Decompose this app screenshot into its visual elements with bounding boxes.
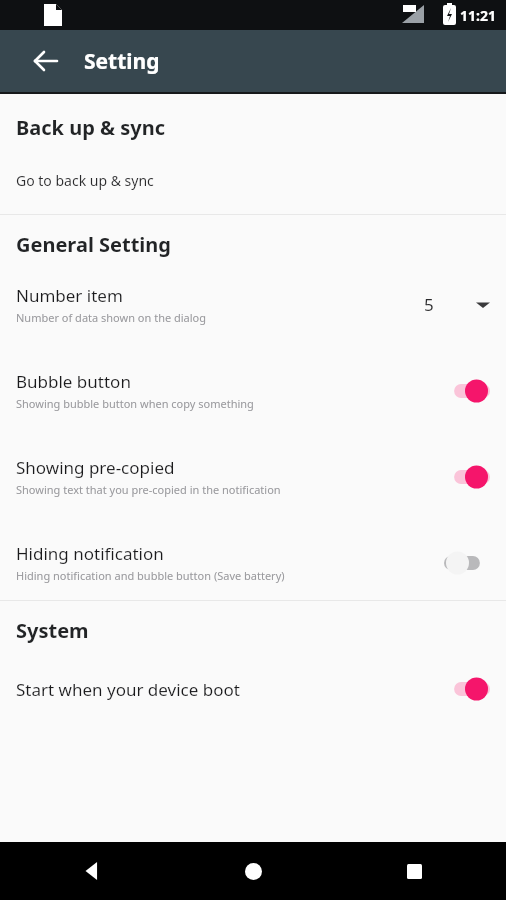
staticText: Showing bubble button when copy somethin… xyxy=(16,396,254,411)
staticText: Start when your device boot xyxy=(16,678,444,701)
staticText: Showing text that you pre-copied in the … xyxy=(16,482,281,497)
staticText: System xyxy=(16,617,89,644)
staticText: Hiding notification xyxy=(16,542,164,565)
button[interactable]: Toggle on xyxy=(444,676,490,702)
staticText: Number item xyxy=(16,284,123,307)
staticText: Bubble button xyxy=(16,370,131,393)
button[interactable]: Bubble button xyxy=(0,370,506,411)
staticText: Number of data shown on the dialog xyxy=(16,310,207,325)
staticText: Go to back up & sync xyxy=(16,171,154,190)
staticText: Setting xyxy=(84,47,160,76)
button[interactable]: Hiding notification xyxy=(0,542,506,583)
button[interactable]: Back xyxy=(70,849,114,893)
staticText: 11:21 xyxy=(460,6,496,25)
other: Dropdown xyxy=(476,298,490,312)
button[interactable]: Toggle on xyxy=(444,378,490,404)
button[interactable]: Back xyxy=(22,37,70,85)
button[interactable]: Toggle on xyxy=(444,464,490,490)
button[interactable]: Go to back up & sync xyxy=(0,167,506,194)
button[interactable]: Number item xyxy=(0,284,506,325)
button[interactable]: Toggle off xyxy=(444,550,490,576)
button[interactable]: Start when your device boot xyxy=(0,676,506,702)
button[interactable]: Recents xyxy=(392,849,436,893)
staticText: General Setting xyxy=(16,231,171,258)
staticText: Hiding notification and bubble button (S… xyxy=(16,568,285,583)
button[interactable]: Home xyxy=(231,849,275,893)
button[interactable]: Showing pre-copied xyxy=(0,456,506,497)
staticText: 5 xyxy=(424,293,434,316)
staticText: Back up & sync xyxy=(16,114,166,141)
staticText: Showing pre-copied xyxy=(16,456,175,479)
